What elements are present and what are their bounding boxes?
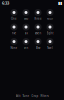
- button[interactable]: Elev: [32, 38, 43, 50]
- staticText: Twel: [47, 46, 53, 50]
- staticText: Nine: [10, 46, 17, 50]
- staticText: Six: [24, 31, 27, 35]
- staticText: Elev: [36, 46, 40, 50]
- button[interactable]: Two: [20, 9, 31, 20]
- button[interactable]: Three: [32, 9, 43, 20]
- staticText: 6:33: [2, 0, 9, 6]
- staticText: Three: [34, 17, 42, 20]
- button[interactable]: Five: [8, 23, 19, 35]
- button[interactable]: Six: [20, 23, 31, 35]
- staticText: Ten: [23, 46, 28, 50]
- staticText: Two: [23, 17, 28, 20]
- staticText: Eight: [46, 31, 53, 35]
- button[interactable]: Four: [44, 9, 55, 20]
- staticText: Seven: [34, 31, 41, 35]
- button[interactable]: Nine: [8, 38, 19, 50]
- button[interactable]: Eight: [44, 23, 55, 35]
- staticText: Four: [47, 17, 53, 20]
- staticText: One: [11, 17, 17, 20]
- button[interactable]: One: [8, 9, 19, 20]
- staticText: ▮▮: [58, 1, 62, 5]
- button[interactable]: Seven: [32, 23, 43, 35]
- staticText: Edit Tune Crop Filters: [15, 94, 48, 98]
- staticText: Five: [11, 31, 16, 35]
- button[interactable]: Ten: [20, 38, 31, 50]
- button[interactable]: Twel: [44, 38, 55, 50]
